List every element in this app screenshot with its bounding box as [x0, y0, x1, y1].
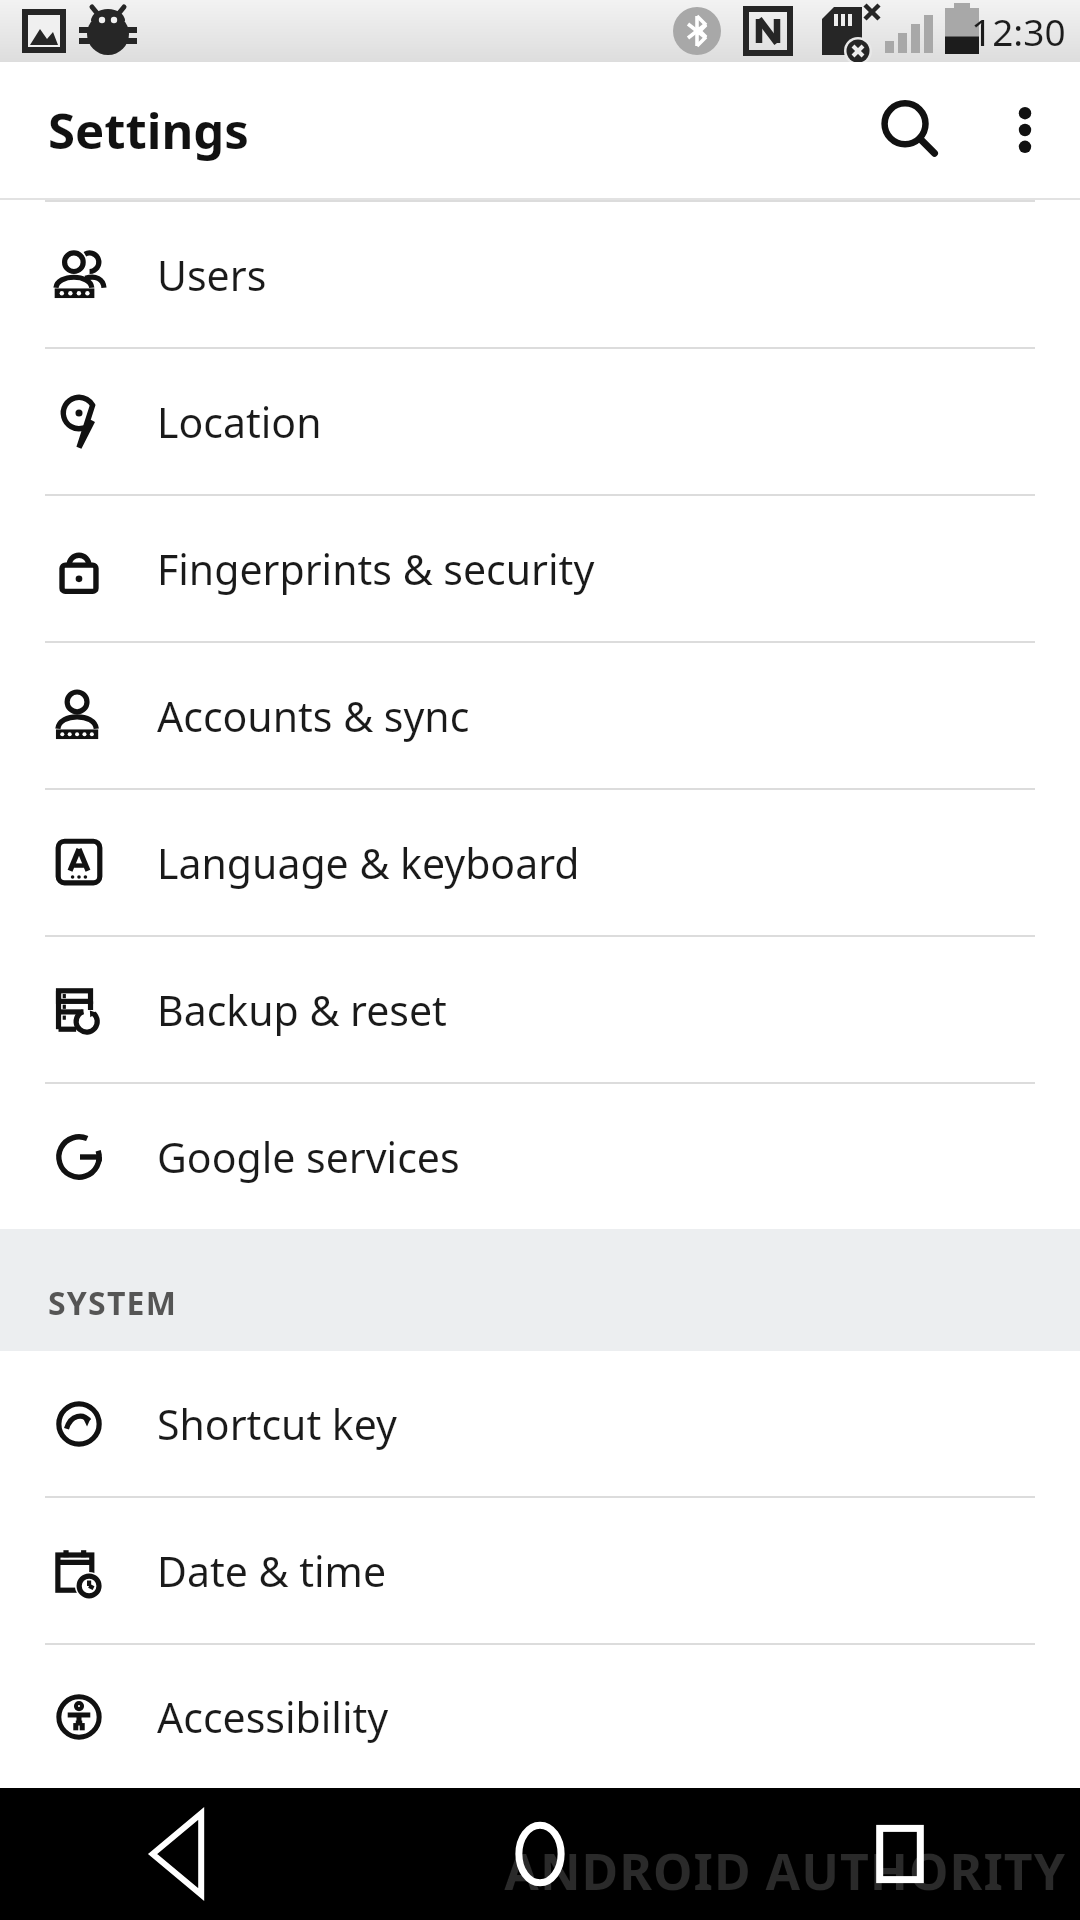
button[interactable]: Home — [360, 1788, 720, 1920]
button[interactable]: Accessibility — [0, 1645, 1080, 1788]
button[interactable]: Recent apps — [720, 1788, 1080, 1920]
button[interactable]: Back — [0, 1788, 360, 1920]
staticText: Accessibility — [157, 1689, 389, 1745]
staticText: Google services — [157, 1129, 460, 1185]
button[interactable]: Location — [0, 349, 1080, 494]
button[interactable]: Google services — [0, 1084, 1080, 1229]
staticText: Accounts & sync — [157, 688, 470, 744]
button[interactable]: Fingerprints & security — [0, 496, 1080, 641]
staticText: Location — [157, 394, 322, 450]
staticText: Settings — [48, 97, 249, 164]
staticText: Backup & reset — [157, 982, 447, 1038]
button[interactable]: Shortcut key — [0, 1351, 1080, 1496]
staticText: 12:30 — [971, 6, 1066, 56]
button[interactable]: Accounts & sync — [0, 643, 1080, 788]
staticText: ANDROID AUTHORITY — [504, 1837, 1066, 1905]
staticText: Date & time — [157, 1543, 387, 1599]
staticText: Fingerprints & security — [157, 541, 595, 597]
button[interactable]: Language & keyboard — [0, 790, 1080, 935]
staticText: Language & keyboard — [157, 835, 580, 891]
button[interactable]: Search — [850, 70, 970, 190]
button[interactable]: Users — [0, 202, 1080, 347]
button[interactable]: More options — [970, 75, 1080, 185]
staticText: Users — [157, 247, 267, 303]
button[interactable]: Backup & reset — [0, 937, 1080, 1082]
button[interactable]: Date & time — [0, 1498, 1080, 1643]
staticText: SYSTEM — [48, 1281, 178, 1325]
staticText: Shortcut key — [157, 1396, 397, 1452]
